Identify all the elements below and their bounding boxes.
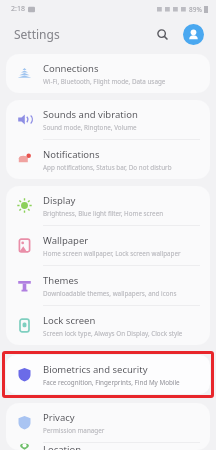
button[interactable]: Privacy xyxy=(6,403,210,442)
button[interactable]: Display xyxy=(6,186,210,225)
staticText: Themes xyxy=(43,274,79,287)
staticText: Location xyxy=(43,443,82,450)
staticText: Display xyxy=(43,194,76,207)
staticText: Biometrics and security xyxy=(43,363,148,376)
button[interactable]: Account xyxy=(183,24,204,45)
staticText: Privacy xyxy=(43,411,75,424)
button[interactable]: Sounds and vibration xyxy=(6,100,210,139)
staticText: Screen lock type, Always On Display, Clo… xyxy=(43,329,183,338)
staticText: Brightness, Blue light filter, Home scre… xyxy=(43,209,164,218)
staticText: Settings xyxy=(14,26,60,42)
staticText: Sounds and vibration xyxy=(43,108,138,121)
button[interactable]: Search xyxy=(151,23,173,45)
button[interactable]: Lock screen xyxy=(6,306,210,345)
staticText: Notifications xyxy=(43,148,100,161)
staticText: Downloadable themes, wallpapers, and ico… xyxy=(43,289,177,298)
staticText: Wi-Fi, Bluetooth, Flight mode, Data usag… xyxy=(43,77,166,86)
staticText: Wallpaper xyxy=(43,234,89,247)
staticText: 89% xyxy=(189,5,202,14)
staticText: Home screen wallpaper, Lock screen wallp… xyxy=(43,249,181,258)
button[interactable]: Themes xyxy=(6,266,210,305)
staticText: Sound mode, Ringtone, Volume xyxy=(43,123,137,132)
button[interactable]: Biometrics and security xyxy=(6,355,210,394)
staticText: Face recognition, Fingerprints, Find My … xyxy=(43,378,180,387)
button[interactable]: Connections xyxy=(6,54,210,93)
staticText: Connections xyxy=(43,62,99,75)
staticText: Lock screen xyxy=(43,314,96,327)
staticText: App notifications, Status bar, Do not di… xyxy=(43,163,172,172)
staticText: Permission manager xyxy=(43,426,105,435)
button[interactable]: Wallpaper xyxy=(6,226,210,265)
button[interactable]: Location xyxy=(6,443,210,450)
button[interactable]: Notifications xyxy=(6,140,210,179)
staticText: 2:18 xyxy=(11,4,25,14)
